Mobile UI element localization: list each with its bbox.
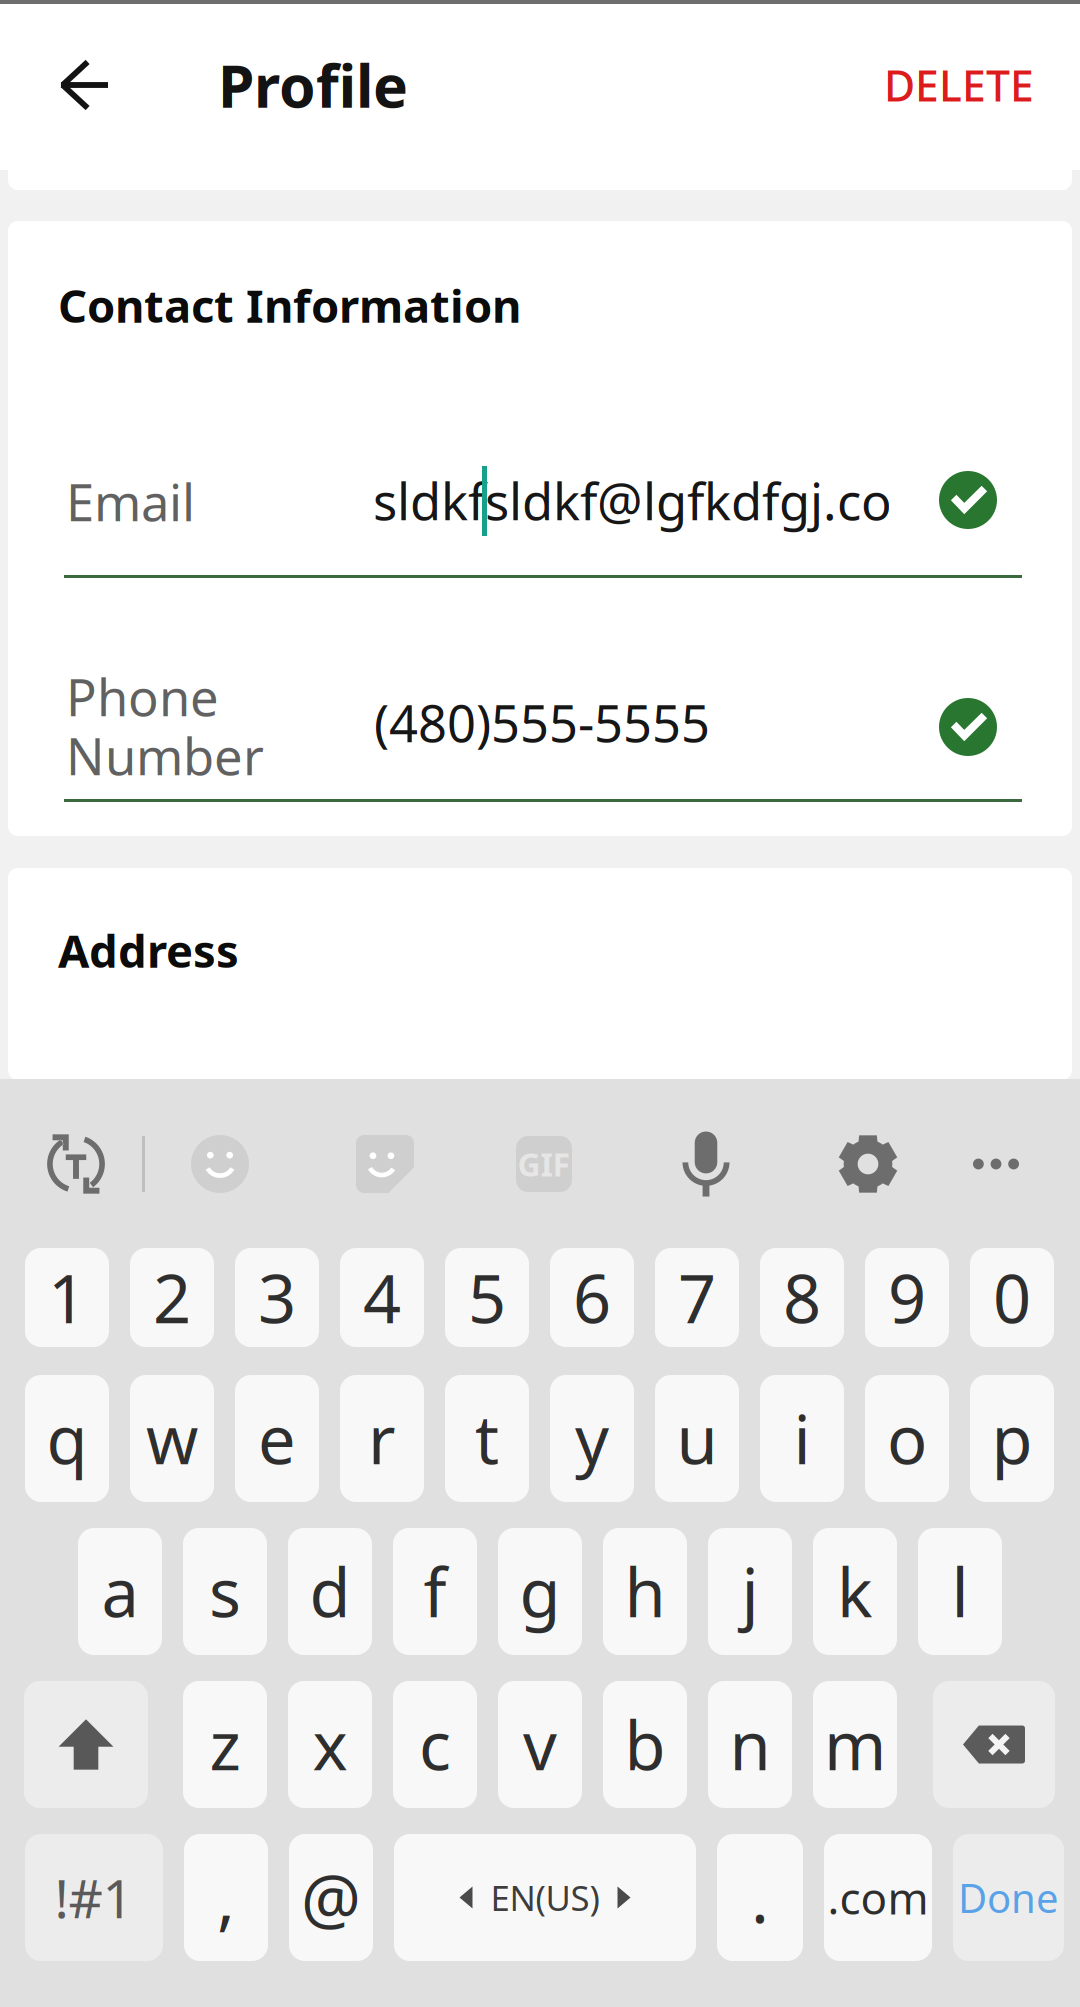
button[interactable]: y — [550, 1375, 634, 1502]
button[interactable]: Done — [953, 1834, 1064, 1961]
staticText: e — [258, 1394, 296, 1483]
button[interactable]: e — [235, 1375, 319, 1502]
button[interactable]: 2 — [130, 1248, 214, 1347]
staticText: 2 — [153, 1253, 191, 1342]
button[interactable]: v — [498, 1681, 582, 1808]
staticText: b — [624, 1700, 665, 1789]
button[interactable]: r — [340, 1375, 424, 1502]
staticText: i — [793, 1394, 810, 1483]
button[interactable]: t — [445, 1375, 529, 1502]
button[interactable]: 6 — [550, 1248, 634, 1347]
staticText: 9 — [888, 1253, 926, 1342]
button[interactable]: 3 — [235, 1248, 319, 1347]
button[interactable]: i — [760, 1375, 844, 1502]
staticText: r — [368, 1394, 396, 1483]
staticText: Phone — [66, 663, 219, 730]
button[interactable]: f — [393, 1528, 477, 1655]
button[interactable]: k — [813, 1528, 897, 1655]
staticText: Profile — [218, 46, 408, 124]
button[interactable]: 1 — [25, 1248, 109, 1347]
button[interactable]: GIF — [494, 1114, 594, 1214]
button[interactable]: s — [183, 1528, 267, 1655]
staticText: sldkfsldkf@lgfkdfgj.co — [373, 467, 892, 534]
button[interactable]: DELETE — [859, 0, 1059, 170]
staticText: .com — [827, 1868, 928, 1927]
staticText: !#1 — [54, 1862, 133, 1933]
staticText: a — [101, 1547, 138, 1636]
button[interactable]: Back — [22, 0, 146, 170]
button[interactable]: a — [78, 1528, 162, 1655]
staticText: n — [729, 1700, 770, 1789]
button[interactable]: More — [946, 1114, 1046, 1214]
button[interactable]: o — [865, 1375, 949, 1502]
staticText: DELETE — [884, 57, 1034, 113]
button[interactable]: u — [655, 1375, 739, 1502]
staticText: g — [519, 1547, 560, 1636]
staticText: Done — [958, 1871, 1059, 1924]
staticText: Number — [66, 722, 264, 789]
staticText: 1 — [48, 1253, 86, 1342]
button[interactable]: c — [393, 1681, 477, 1808]
button[interactable]: 0 — [970, 1248, 1054, 1347]
button[interactable]: . — [717, 1834, 803, 1961]
staticText: l — [951, 1547, 968, 1636]
button[interactable]: Stickers — [335, 1114, 435, 1214]
button[interactable] — [933, 1681, 1055, 1808]
staticText: Contact Information — [58, 275, 521, 335]
staticText: p — [991, 1394, 1032, 1483]
staticText: (480)555-5555 — [374, 689, 710, 756]
button[interactable]: Profile — [218, 0, 448, 170]
button[interactable]: Voice input — [656, 1114, 756, 1214]
staticText: z — [209, 1700, 240, 1789]
staticText: 5 — [468, 1253, 506, 1342]
button[interactable]: x — [288, 1681, 372, 1808]
button[interactable]: q — [25, 1375, 109, 1502]
staticText: , — [217, 1853, 235, 1942]
staticText: w — [146, 1394, 198, 1483]
button[interactable]: , — [184, 1834, 268, 1961]
staticText: f — [423, 1547, 446, 1636]
button[interactable]: h — [603, 1528, 687, 1655]
button[interactable]: !#1 — [25, 1834, 163, 1961]
staticText: q — [46, 1394, 87, 1483]
staticText: d — [309, 1547, 350, 1636]
button[interactable]: @ — [289, 1834, 373, 1961]
staticText: 7 — [678, 1253, 716, 1342]
staticText: @ — [301, 1853, 361, 1942]
staticText: 8 — [783, 1253, 821, 1342]
button[interactable]: n — [708, 1681, 792, 1808]
button[interactable]: Translate — [26, 1114, 126, 1214]
staticText: EN(US) — [490, 1874, 599, 1920]
staticText: x — [312, 1700, 347, 1789]
button[interactable]: 4 — [340, 1248, 424, 1347]
staticText: Address — [58, 920, 239, 980]
staticText: c — [419, 1700, 451, 1789]
staticText: 6 — [573, 1253, 611, 1342]
staticText: GIF — [517, 1143, 570, 1185]
button[interactable]: 5 — [445, 1248, 529, 1347]
staticText: v — [523, 1700, 557, 1789]
button[interactable]: l — [918, 1528, 1002, 1655]
staticText: y — [575, 1394, 609, 1483]
button[interactable]: m — [813, 1681, 897, 1808]
staticText: 3 — [258, 1253, 296, 1342]
button[interactable] — [24, 1681, 148, 1808]
button[interactable]: g — [498, 1528, 582, 1655]
button[interactable]: d — [288, 1528, 372, 1655]
button[interactable]: j — [708, 1528, 792, 1655]
staticText: o — [887, 1394, 927, 1483]
button[interactable]: .com — [824, 1834, 932, 1961]
staticText: s — [209, 1547, 241, 1636]
button[interactable]: 7 — [655, 1248, 739, 1347]
button[interactable]: b — [603, 1681, 687, 1808]
button[interactable]: 9 — [865, 1248, 949, 1347]
staticText: k — [837, 1547, 873, 1636]
button[interactable]: p — [970, 1375, 1054, 1502]
button[interactable]: EN(US) — [394, 1834, 696, 1961]
button[interactable]: 8 — [760, 1248, 844, 1347]
button[interactable]: w — [130, 1375, 214, 1502]
staticText: . — [751, 1853, 769, 1942]
button[interactable]: Settings — [818, 1114, 918, 1214]
button[interactable]: Emoji — [170, 1114, 270, 1214]
button[interactable]: z — [183, 1681, 267, 1808]
